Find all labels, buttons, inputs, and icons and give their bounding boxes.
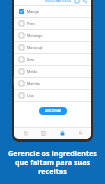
staticText: Mamão	[27, 81, 40, 86]
button[interactable]: Shopping cart	[55, 128, 69, 139]
button[interactable]: Recipes	[18, 128, 32, 139]
staticText: Melão	[27, 69, 38, 74]
button[interactable]: Maracujá	[14, 42, 91, 54]
button[interactable]: Morango	[14, 30, 91, 42]
button[interactable]: Manga	[14, 6, 91, 18]
button[interactable]: Share	[82, 0, 88, 4]
button[interactable]: Select all	[74, 0, 80, 4]
button[interactable]: Pera	[14, 18, 91, 30]
button[interactable]: Profile	[73, 128, 87, 139]
staticText: Gerencie os ingredientes que faltam para…	[8, 148, 97, 177]
staticText: Kiwi	[27, 57, 34, 62]
button[interactable]: Kiwi	[14, 54, 91, 66]
button[interactable]: Melão	[14, 66, 91, 78]
button[interactable]: ADICIONAR	[39, 107, 67, 115]
button[interactable]: SELECIONAR TODOS	[45, 0, 72, 3]
button[interactable]: Uva	[14, 90, 91, 102]
button[interactable]: Mamão	[14, 78, 91, 90]
staticText: Uva	[27, 93, 34, 98]
staticText: ADICIONAR	[45, 109, 62, 113]
staticText: Pera	[27, 21, 35, 26]
staticText: Morango	[27, 33, 43, 38]
button[interactable]: Lists	[36, 128, 50, 139]
staticText: Manga	[27, 9, 39, 14]
staticText: Maracujá	[27, 45, 43, 50]
